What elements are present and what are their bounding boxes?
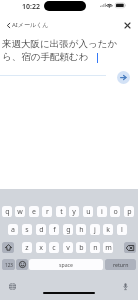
staticText: k: [106, 225, 110, 235]
staticText: n: [93, 243, 98, 253]
button[interactable]: e: [29, 206, 39, 217]
staticText: r: [46, 207, 49, 217]
button[interactable]: z: [22, 242, 32, 253]
button[interactable]: i: [97, 206, 107, 217]
staticText: 10:22: [22, 2, 40, 12]
button[interactable]: c: [49, 242, 59, 253]
staticText: d: [39, 225, 44, 235]
button[interactable]: m: [103, 242, 113, 253]
staticText: s: [25, 225, 29, 235]
button[interactable]: w: [15, 206, 25, 217]
button[interactable]: AIメールくん: [5, 19, 51, 31]
staticText: 来週大阪に出張が入ったから、宿の手配頼むわ: [2, 38, 135, 62]
button[interactable]: Close: [119, 17, 135, 33]
button[interactable]: Backspace: [124, 242, 136, 253]
staticText: w: [17, 207, 23, 217]
staticText: return: [113, 261, 129, 268]
staticText: b: [79, 243, 84, 253]
staticText: q: [5, 207, 10, 217]
staticText: l: [121, 225, 123, 235]
staticText: v: [66, 243, 70, 253]
staticText: a: [11, 225, 15, 235]
staticText: x: [39, 243, 43, 253]
button[interactable]: a: [8, 224, 18, 235]
button[interactable]: r: [42, 206, 52, 217]
button[interactable]: 123: [2, 259, 15, 270]
staticText: 123: [5, 262, 13, 268]
button[interactable]: Emoji: [16, 259, 28, 270]
button[interactable]: t: [56, 206, 66, 217]
button[interactable]: Dictation: [119, 280, 131, 292]
button[interactable]: b: [76, 242, 86, 253]
staticText: f: [53, 225, 56, 235]
button[interactable]: j: [90, 224, 100, 235]
button[interactable]: return: [105, 259, 136, 270]
button[interactable]: h: [76, 224, 86, 235]
staticText: j: [94, 225, 96, 235]
button[interactable]: n: [90, 242, 100, 253]
staticText: g: [66, 225, 71, 235]
staticText: u: [86, 207, 91, 217]
button[interactable]: v: [63, 242, 73, 253]
button[interactable]: space: [29, 259, 103, 270]
button[interactable]: l: [117, 224, 127, 235]
button[interactable]: y: [69, 206, 79, 217]
button[interactable]: p: [124, 206, 134, 217]
button[interactable]: g: [63, 224, 73, 235]
staticText: e: [32, 207, 36, 217]
button[interactable]: d: [36, 224, 46, 235]
button[interactable]: Switch keyboard: [6, 280, 18, 292]
staticText: m: [105, 243, 112, 253]
button[interactable]: o: [110, 206, 120, 217]
button[interactable]: q: [2, 206, 12, 217]
button[interactable]: x: [36, 242, 46, 253]
button[interactable]: f: [49, 224, 59, 235]
staticText: z: [25, 243, 29, 253]
staticText: AIメールくん: [12, 21, 49, 29]
button[interactable]: Send: [117, 71, 130, 84]
button[interactable]: u: [83, 206, 93, 217]
button[interactable]: Shift: [2, 242, 14, 253]
button[interactable]: s: [22, 224, 32, 235]
staticText: i: [101, 207, 103, 217]
staticText: space: [59, 261, 74, 268]
staticText: h: [79, 225, 84, 235]
staticText: o: [113, 207, 118, 217]
staticText: t: [60, 207, 63, 217]
staticText: c: [52, 243, 56, 253]
staticText: y: [72, 207, 76, 217]
button[interactable]: k: [103, 224, 113, 235]
staticText: p: [127, 207, 132, 217]
